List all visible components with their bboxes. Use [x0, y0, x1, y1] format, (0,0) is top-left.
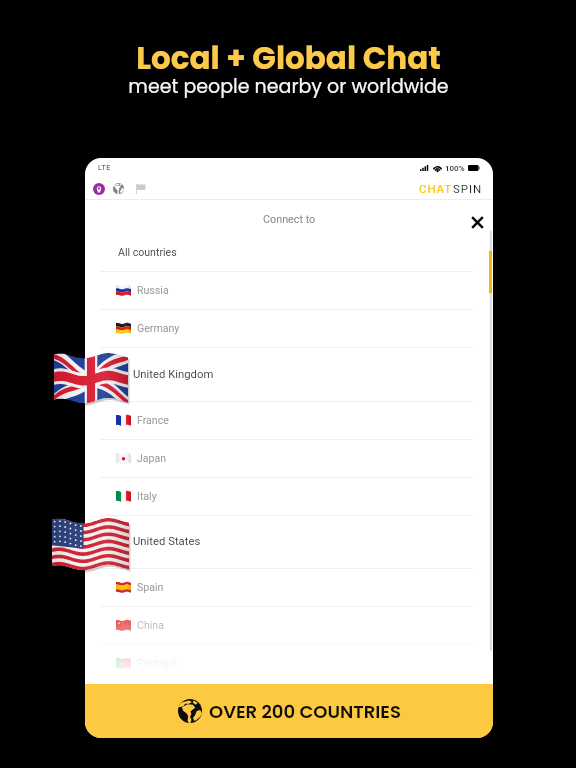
staticText: Russia: [137, 284, 169, 296]
staticText: All countries: [118, 246, 177, 258]
staticText: Portugal: [137, 657, 178, 669]
staticText: 100%: [445, 164, 465, 173]
button[interactable]: All countries: [85, 233, 493, 271]
staticText: OVER 200 COUNTRIES: [209, 699, 401, 724]
staticText: CHAT: [419, 182, 453, 195]
button[interactable]: Italy: [85, 477, 493, 515]
staticText: United Kingdom: [133, 368, 214, 381]
button[interactable]: Country filter: [134, 182, 147, 195]
button[interactable]: Japan: [85, 439, 493, 477]
button[interactable]: Russia: [85, 271, 493, 309]
staticText: Spain: [137, 581, 164, 593]
staticText: meet people nearby or worldwide: [128, 73, 449, 100]
button[interactable]: France: [85, 401, 493, 439]
button[interactable]: Portugal: [85, 644, 493, 682]
staticText: Italy: [137, 490, 157, 502]
button[interactable]: Close: [465, 210, 489, 234]
button[interactable]: United States: [85, 515, 493, 568]
button[interactable]: Spain: [85, 568, 493, 606]
staticText: France: [137, 414, 169, 426]
staticText: Connect to: [263, 213, 316, 226]
staticText: LTE: [98, 164, 111, 172]
staticText: Germany: [137, 322, 180, 334]
button[interactable]: China: [85, 606, 493, 644]
staticText: Local + Global Chat: [136, 36, 441, 79]
button[interactable]: United Kingdom: [85, 347, 493, 401]
button[interactable]: OVER 200 COUNTRIES: [85, 684, 493, 738]
button[interactable]: Nearby: [92, 182, 105, 195]
button[interactable]: Global: [112, 182, 125, 195]
staticText: Japan: [137, 452, 167, 464]
staticText: SPIN: [453, 182, 483, 195]
staticText: United States: [133, 535, 201, 548]
staticText: China: [137, 619, 164, 631]
button[interactable]: Germany: [85, 309, 493, 347]
button[interactable]: ChatSpin: [419, 182, 483, 195]
